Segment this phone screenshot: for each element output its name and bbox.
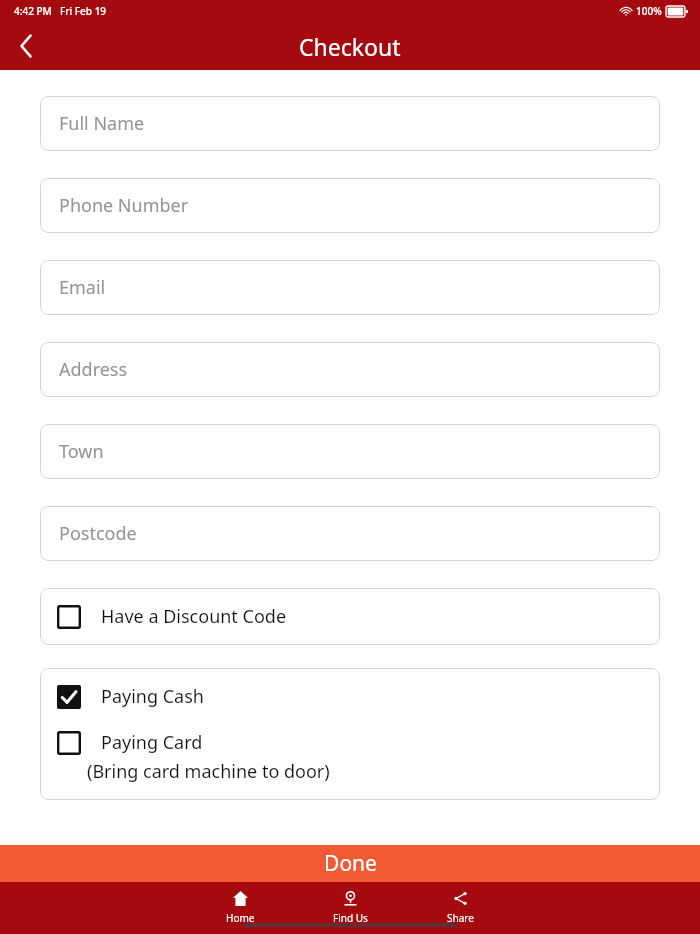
button[interactable]: Full Name	[40, 96, 660, 151]
button[interactable]: Town	[40, 424, 660, 479]
button[interactable]: Home	[185, 887, 295, 929]
staticText: Phone Number	[59, 193, 189, 218]
button[interactable]: Address	[40, 342, 660, 397]
button[interactable]: Back	[0, 22, 52, 70]
staticText: 4:42 PM	[14, 4, 52, 18]
staticText: Fri Feb 19	[60, 4, 107, 18]
button[interactable]: Share	[405, 887, 515, 929]
staticText: Find Us	[333, 911, 368, 925]
staticText: Town	[59, 439, 104, 464]
staticText: Home	[226, 911, 255, 925]
staticText: Full Name	[59, 111, 145, 136]
button[interactable]: Have a Discount Code	[40, 588, 660, 645]
button[interactable]: Done	[0, 845, 700, 882]
staticText: Done	[324, 849, 377, 878]
staticText: (Bring card machine to door)	[87, 759, 330, 784]
staticText: Paying Card	[101, 730, 203, 755]
staticText: Email	[59, 275, 106, 300]
button[interactable]: Paying Cash	[57, 684, 648, 709]
staticText: Share	[447, 911, 474, 925]
button[interactable]: Find Us	[295, 887, 405, 929]
staticText: Address	[59, 357, 128, 382]
button[interactable]: Postcode	[40, 506, 660, 561]
button[interactable]: Email	[40, 260, 660, 315]
staticText: Have a Discount Code	[101, 604, 287, 629]
staticText: Checkout	[299, 31, 401, 62]
button[interactable]: Phone Number	[40, 178, 660, 233]
staticText: 100%	[636, 4, 662, 18]
staticText: Postcode	[59, 521, 137, 546]
staticText: Paying Cash	[101, 684, 204, 709]
button[interactable]: Paying Card	[57, 730, 648, 784]
